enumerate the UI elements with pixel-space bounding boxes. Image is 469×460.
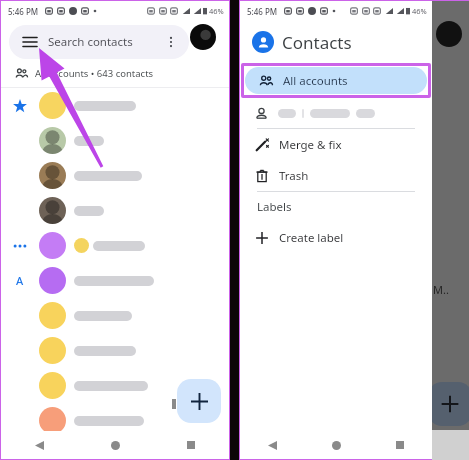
button[interactable]: All accounts • 643 contacts <box>1 59 229 87</box>
button[interactable] <box>1 158 229 193</box>
button[interactable]: Account <box>190 24 216 50</box>
button[interactable] <box>240 98 432 128</box>
button[interactable] <box>1 368 229 403</box>
button[interactable]: Create label <box>240 222 432 253</box>
button[interactable]: Merge & fix <box>240 129 432 160</box>
button[interactable] <box>1 228 229 263</box>
button[interactable]: Recent apps <box>387 432 413 458</box>
staticText: 46% <box>412 6 427 16</box>
button[interactable]: Home <box>102 432 128 458</box>
staticText: All accounts • 643 contacts <box>35 67 154 80</box>
button[interactable] <box>1 403 229 438</box>
button[interactable]: Open navigation drawer <box>19 31 41 53</box>
button[interactable] <box>1 88 229 123</box>
button[interactable] <box>1 123 229 158</box>
staticText: 5:46 PM <box>8 6 39 17</box>
button[interactable] <box>1 298 229 333</box>
staticText: All accounts <box>283 73 348 89</box>
staticText: Contacts <box>282 31 352 54</box>
button[interactable]: Back <box>259 432 285 458</box>
staticText: Trash <box>279 168 309 184</box>
button[interactable]: Recent apps <box>178 432 204 458</box>
button[interactable]: Create contact <box>177 379 221 423</box>
button[interactable]: Home <box>323 432 349 458</box>
button[interactable]: Back <box>26 432 52 458</box>
staticText: Merge & fix <box>279 137 342 153</box>
staticText: Create label <box>279 230 344 246</box>
staticText: Search contacts <box>48 34 133 50</box>
button[interactable]: A <box>1 263 229 298</box>
button[interactable]: Open navigation drawer <box>9 25 189 59</box>
button[interactable] <box>1 193 229 228</box>
staticText: M.. <box>433 282 449 297</box>
button[interactable]: Trash <box>240 160 432 191</box>
button[interactable]: All accounts <box>245 67 427 94</box>
staticText: Labels <box>257 199 292 215</box>
staticText: A <box>16 273 24 288</box>
staticText: 5:46 PM <box>247 6 278 17</box>
staticText: 46% <box>209 6 224 16</box>
button[interactable] <box>1 333 229 368</box>
button[interactable]: More options <box>163 34 179 50</box>
